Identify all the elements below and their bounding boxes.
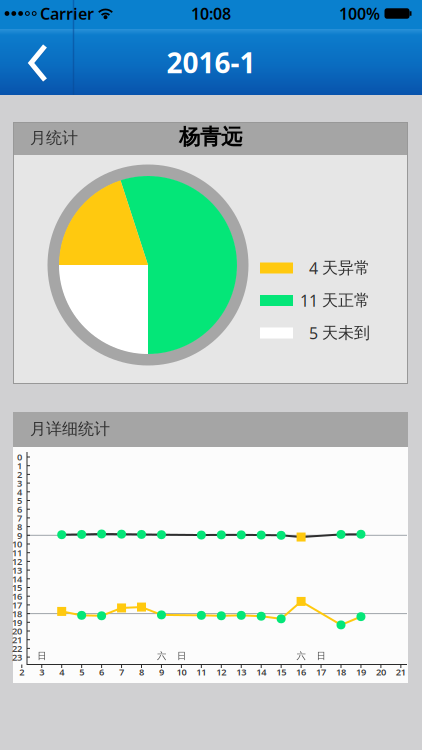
staticText: Carrier: [40, 3, 94, 24]
staticText: 15: [276, 666, 286, 678]
staticText: 月详细统计: [30, 419, 110, 439]
button[interactable]: Back: [0, 29, 73, 95]
staticText: 11: [300, 290, 318, 311]
staticText: 0: [17, 451, 22, 463]
staticText: 10:08: [191, 3, 231, 24]
staticText: 10: [176, 666, 186, 678]
staticText: 日: [37, 650, 46, 662]
staticText: 9: [159, 666, 164, 678]
staticText: 3: [17, 477, 22, 489]
staticText: 8: [139, 666, 144, 678]
staticText: 六: [297, 650, 306, 662]
staticText: 4: [59, 666, 64, 678]
staticText: 8: [17, 520, 22, 533]
staticText: 17: [12, 599, 22, 611]
staticText: 15: [12, 581, 22, 594]
staticText: 9: [17, 529, 22, 541]
staticText: 5: [17, 494, 22, 507]
staticText: 12: [12, 555, 22, 568]
staticText: 4: [17, 486, 22, 498]
staticText: 11: [196, 666, 206, 678]
staticText: 天未到: [322, 323, 370, 343]
staticText: 1: [17, 459, 22, 472]
staticText: 2: [17, 468, 22, 481]
staticText: 14: [12, 573, 22, 585]
staticText: 2016-1: [166, 44, 255, 81]
staticText: 20: [12, 625, 22, 637]
staticText: 日: [177, 650, 186, 662]
staticText: 7: [17, 512, 22, 524]
staticText: 21: [12, 633, 22, 646]
staticText: 2: [19, 666, 24, 678]
staticText: 11: [12, 546, 22, 559]
staticText: 六: [157, 650, 166, 662]
staticText: 19: [356, 666, 366, 678]
staticText: 12: [216, 666, 226, 678]
staticText: 100%: [339, 3, 380, 24]
staticText: 13: [12, 564, 22, 576]
staticText: 月统计: [30, 128, 78, 148]
staticText: 20: [376, 666, 386, 678]
staticText: 5: [309, 322, 318, 344]
staticText: 23: [12, 651, 22, 663]
staticText: 6: [99, 666, 104, 678]
staticText: 日: [317, 650, 326, 662]
staticText: 5: [79, 666, 84, 678]
staticText: 16: [296, 666, 306, 678]
staticText: 10: [12, 538, 22, 550]
staticText: 天异常: [322, 258, 370, 278]
staticText: 14: [256, 666, 266, 678]
staticText: 22: [12, 642, 22, 655]
staticText: 6: [17, 503, 22, 515]
staticText: 4: [309, 257, 318, 279]
staticText: 3: [39, 666, 44, 678]
staticText: 17: [316, 666, 326, 678]
staticText: 21: [396, 666, 406, 678]
staticText: 18: [12, 607, 22, 620]
staticText: 19: [12, 616, 22, 628]
staticText: 天正常: [322, 291, 370, 310]
staticText: 杨青远: [179, 124, 242, 150]
staticText: 16: [12, 590, 22, 602]
staticText: 18: [336, 666, 346, 678]
staticText: 7: [119, 666, 124, 678]
staticText: 13: [236, 666, 246, 678]
